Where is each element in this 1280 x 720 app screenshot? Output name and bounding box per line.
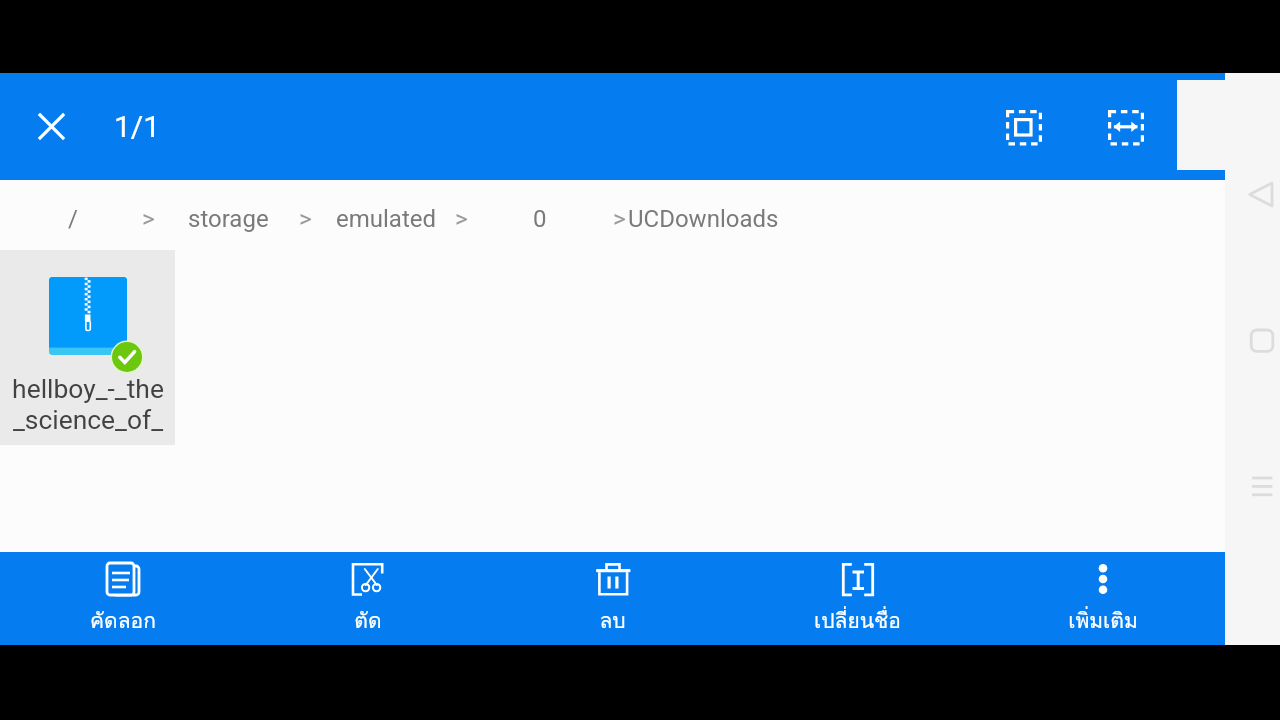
staticText: hellboy_-_the _science_of_ [12,374,164,436]
staticText: > [299,205,312,233]
button[interactable]: Home [1244,319,1280,355]
button[interactable]: > [455,200,468,238]
staticText: > [455,205,468,233]
staticText: ลบ [599,604,626,637]
button[interactable]: Back [1244,172,1280,208]
staticText: เพิ่มเติม [1068,604,1138,637]
button[interactable]: คัดลอก [0,552,245,645]
button[interactable]: > [142,200,155,238]
button[interactable]: storage [188,200,269,238]
staticText: > [142,205,155,233]
button[interactable]: Close [27,102,76,151]
button[interactable]: > [299,200,312,238]
staticText: storage [188,205,269,233]
staticText: คัดลอก [90,604,156,637]
button[interactable]: / [68,200,78,238]
button[interactable]: Select range [1097,99,1153,155]
staticText: 1/1 [114,109,161,144]
staticText: / [68,205,78,233]
button[interactable]: Menu [1244,468,1280,504]
button[interactable]: ลบ [490,552,735,645]
button[interactable]: 0 [533,200,547,238]
button[interactable]: emulated [336,200,437,238]
staticText: UCDownloads [628,205,779,233]
button[interactable]: ตัด [245,552,490,645]
staticText: เปลี่ยนชื่อ [814,604,901,637]
button[interactable]: เพิ่มเติม [980,552,1225,645]
button[interactable]: UCDownloads [628,200,779,238]
staticText: emulated [336,205,437,233]
button[interactable]: > [613,200,626,238]
button[interactable]: hellboy_-_the _science_of_ [0,250,175,445]
staticText: 0 [533,205,547,233]
button[interactable]: Select all [995,99,1051,155]
button[interactable]: เปลี่ยนชื่อ [735,552,980,645]
staticText: ตัด [354,604,382,637]
staticText: > [613,205,626,233]
